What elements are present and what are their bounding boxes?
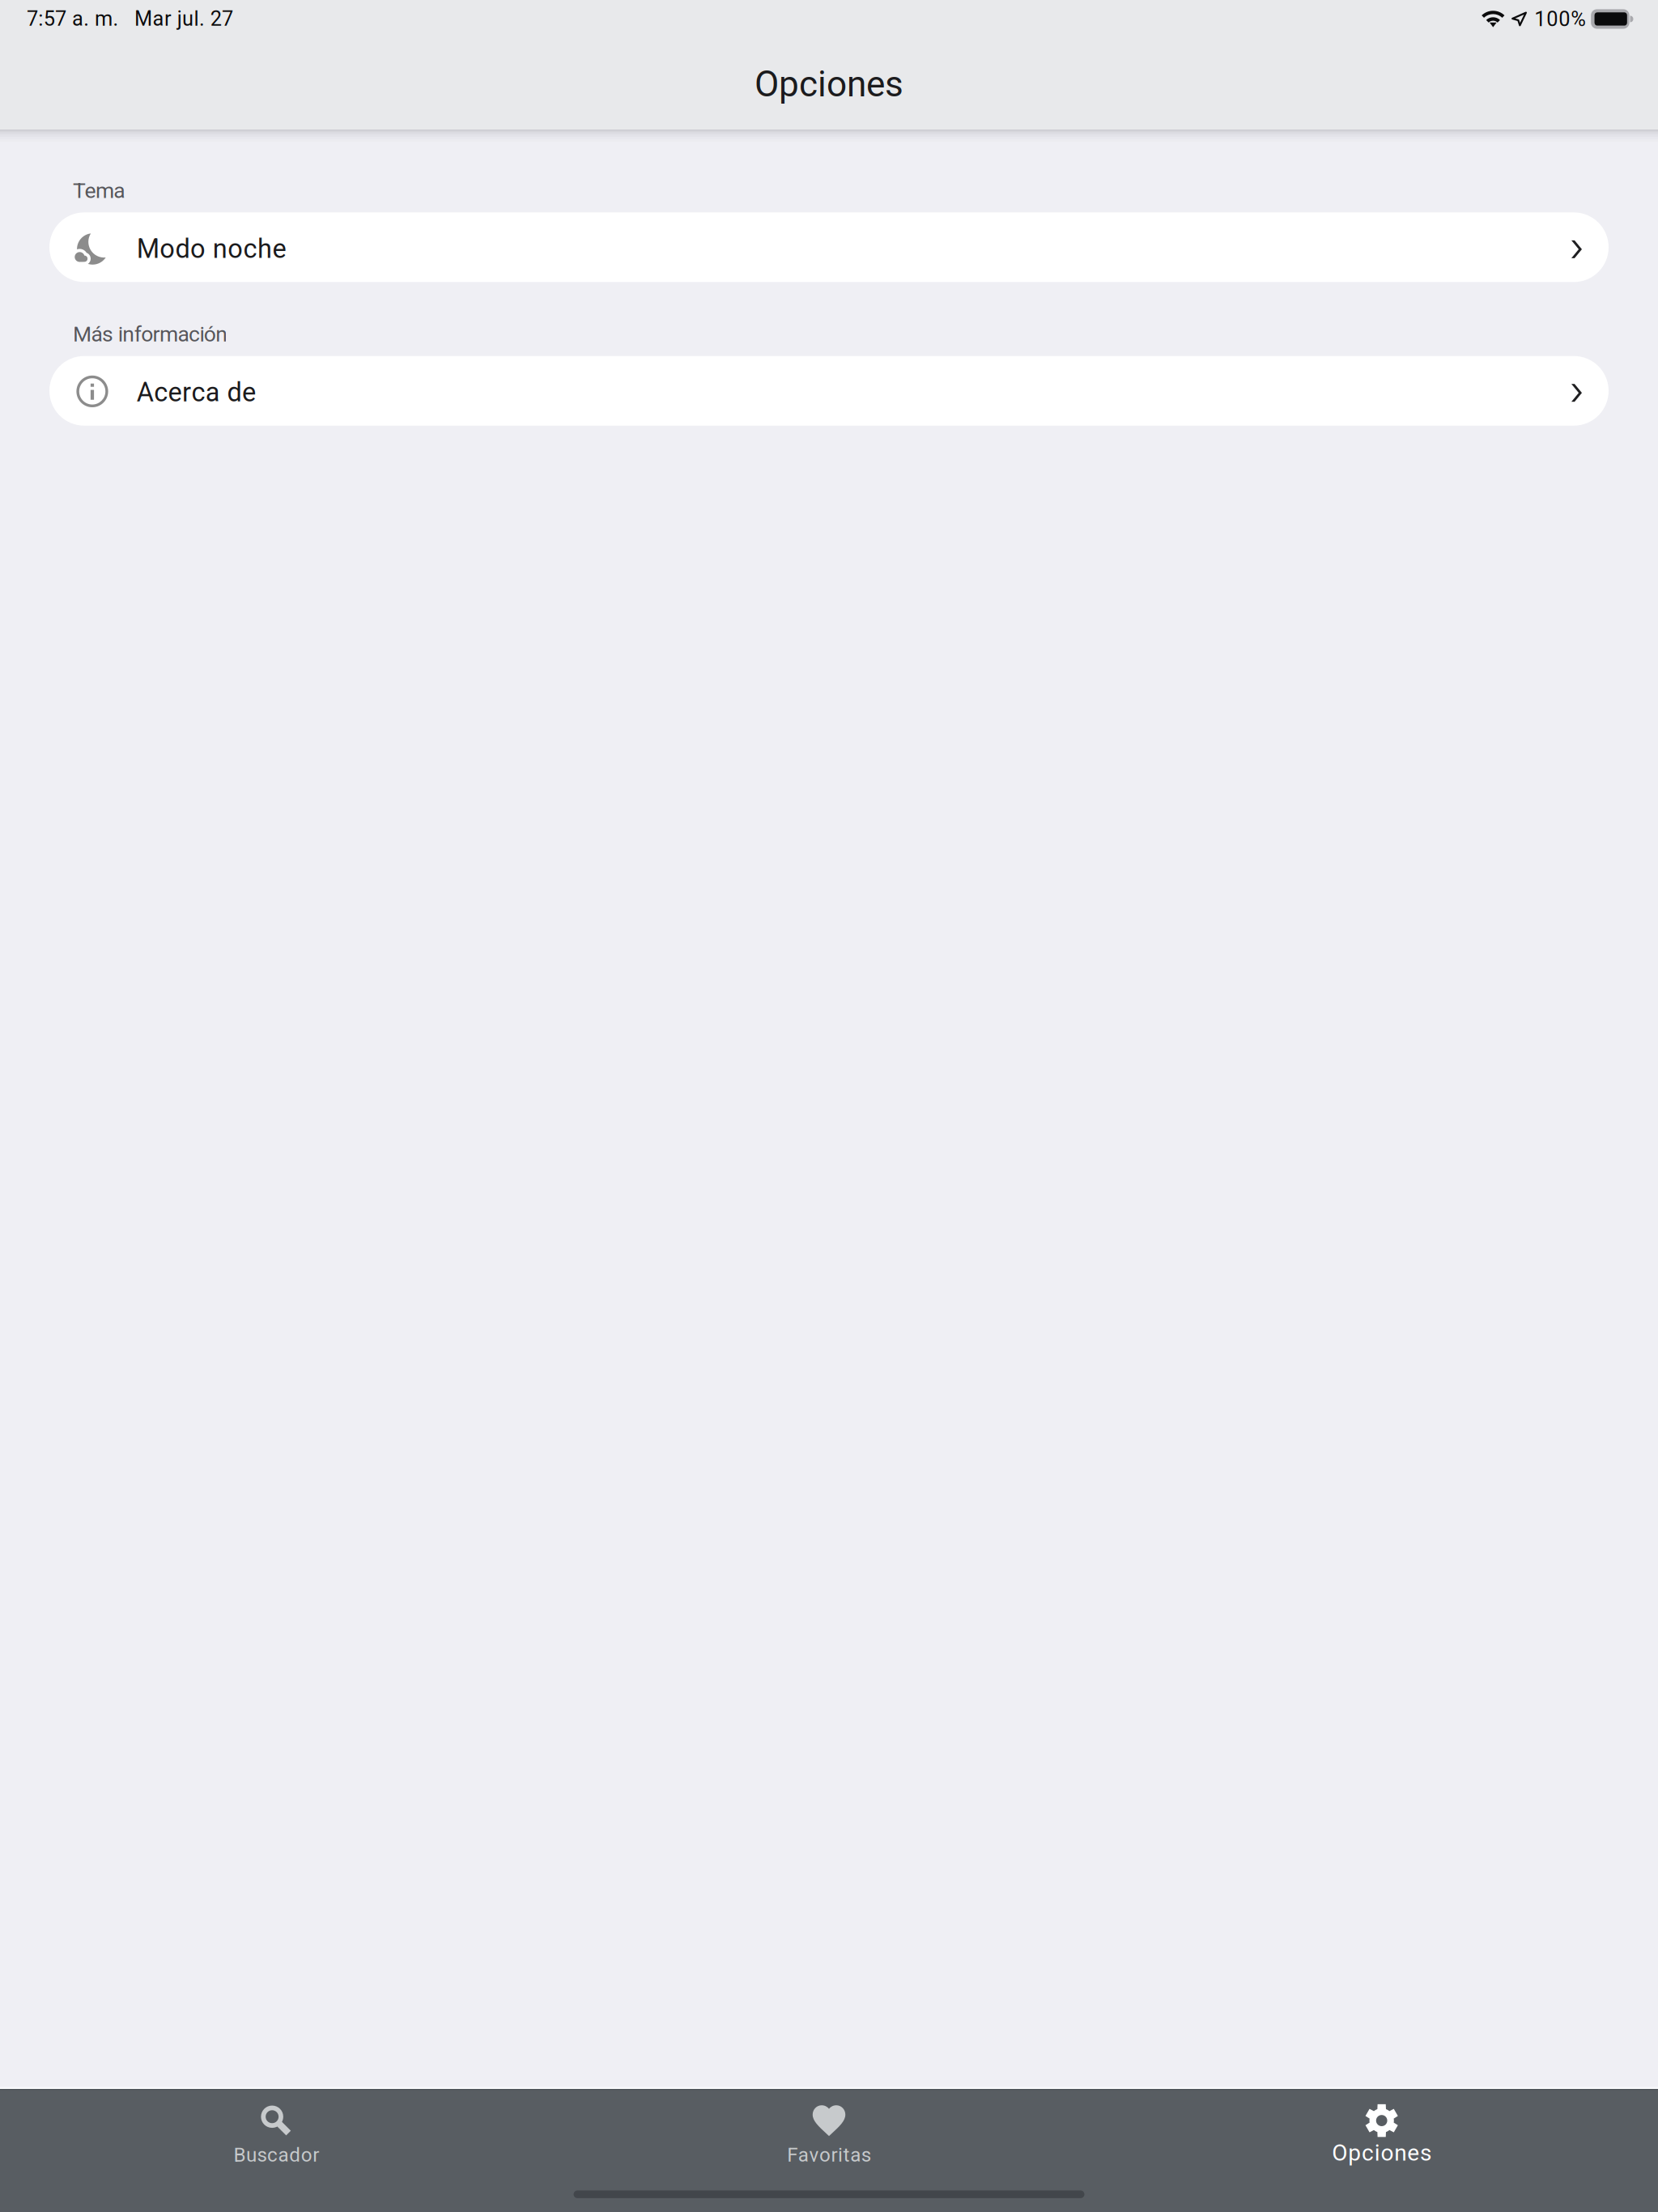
staticText: Más información: [73, 322, 228, 347]
button[interactable]: Opciones: [1105, 2089, 1658, 2212]
staticText: Opciones: [755, 63, 903, 105]
staticText: 7:57 a. m. Mar jul. 27: [27, 7, 233, 31]
button[interactable]: Favoritas: [553, 2089, 1105, 2212]
button[interactable]: Buscador: [0, 2089, 553, 2212]
staticText: 100%: [1534, 7, 1586, 31]
staticText: Acerca de: [137, 377, 256, 408]
staticText: Buscador: [233, 2143, 319, 2166]
staticText: Tema: [73, 178, 125, 203]
staticText: Favoritas: [787, 2143, 871, 2166]
staticText: Opciones: [1332, 2140, 1431, 2166]
button[interactable]: Acerca de: [49, 356, 1609, 426]
staticText: Modo noche: [137, 233, 286, 264]
button[interactable]: Modo noche: [49, 212, 1609, 282]
